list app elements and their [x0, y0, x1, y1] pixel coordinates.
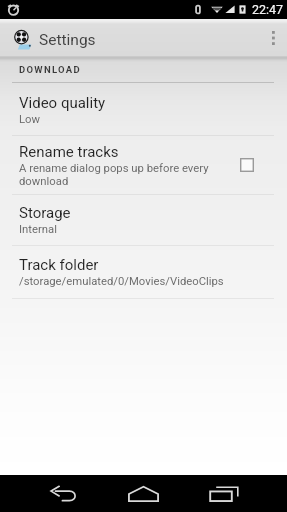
- button[interactable]: Back: [33, 475, 93, 512]
- staticText: DOWNLOAD: [19, 64, 81, 75]
- button[interactable]: Storage: [0, 195, 287, 245]
- button[interactable]: Recent apps: [194, 475, 254, 512]
- staticText: /storage/emulated/0/Movies/VideoClips: [19, 275, 224, 288]
- staticText: Storage: [19, 204, 71, 222]
- staticText: Internal: [19, 223, 57, 236]
- staticText: 22:47: [252, 2, 284, 17]
- staticText: Rename tracks: [19, 143, 119, 161]
- button[interactable]: Home: [113, 475, 173, 512]
- button[interactable]: Track folder: [0, 246, 287, 298]
- staticText: Low: [19, 113, 41, 126]
- button[interactable]: Video quality: [0, 83, 287, 135]
- staticText: A rename dialog pops up before every dow…: [19, 162, 215, 188]
- button[interactable]: Rename tracks: [0, 136, 287, 194]
- staticText: Settings: [39, 31, 96, 49]
- staticText: Video quality: [19, 94, 106, 112]
- button[interactable]: More options: [259, 19, 287, 56]
- staticText: Track folder: [19, 256, 99, 274]
